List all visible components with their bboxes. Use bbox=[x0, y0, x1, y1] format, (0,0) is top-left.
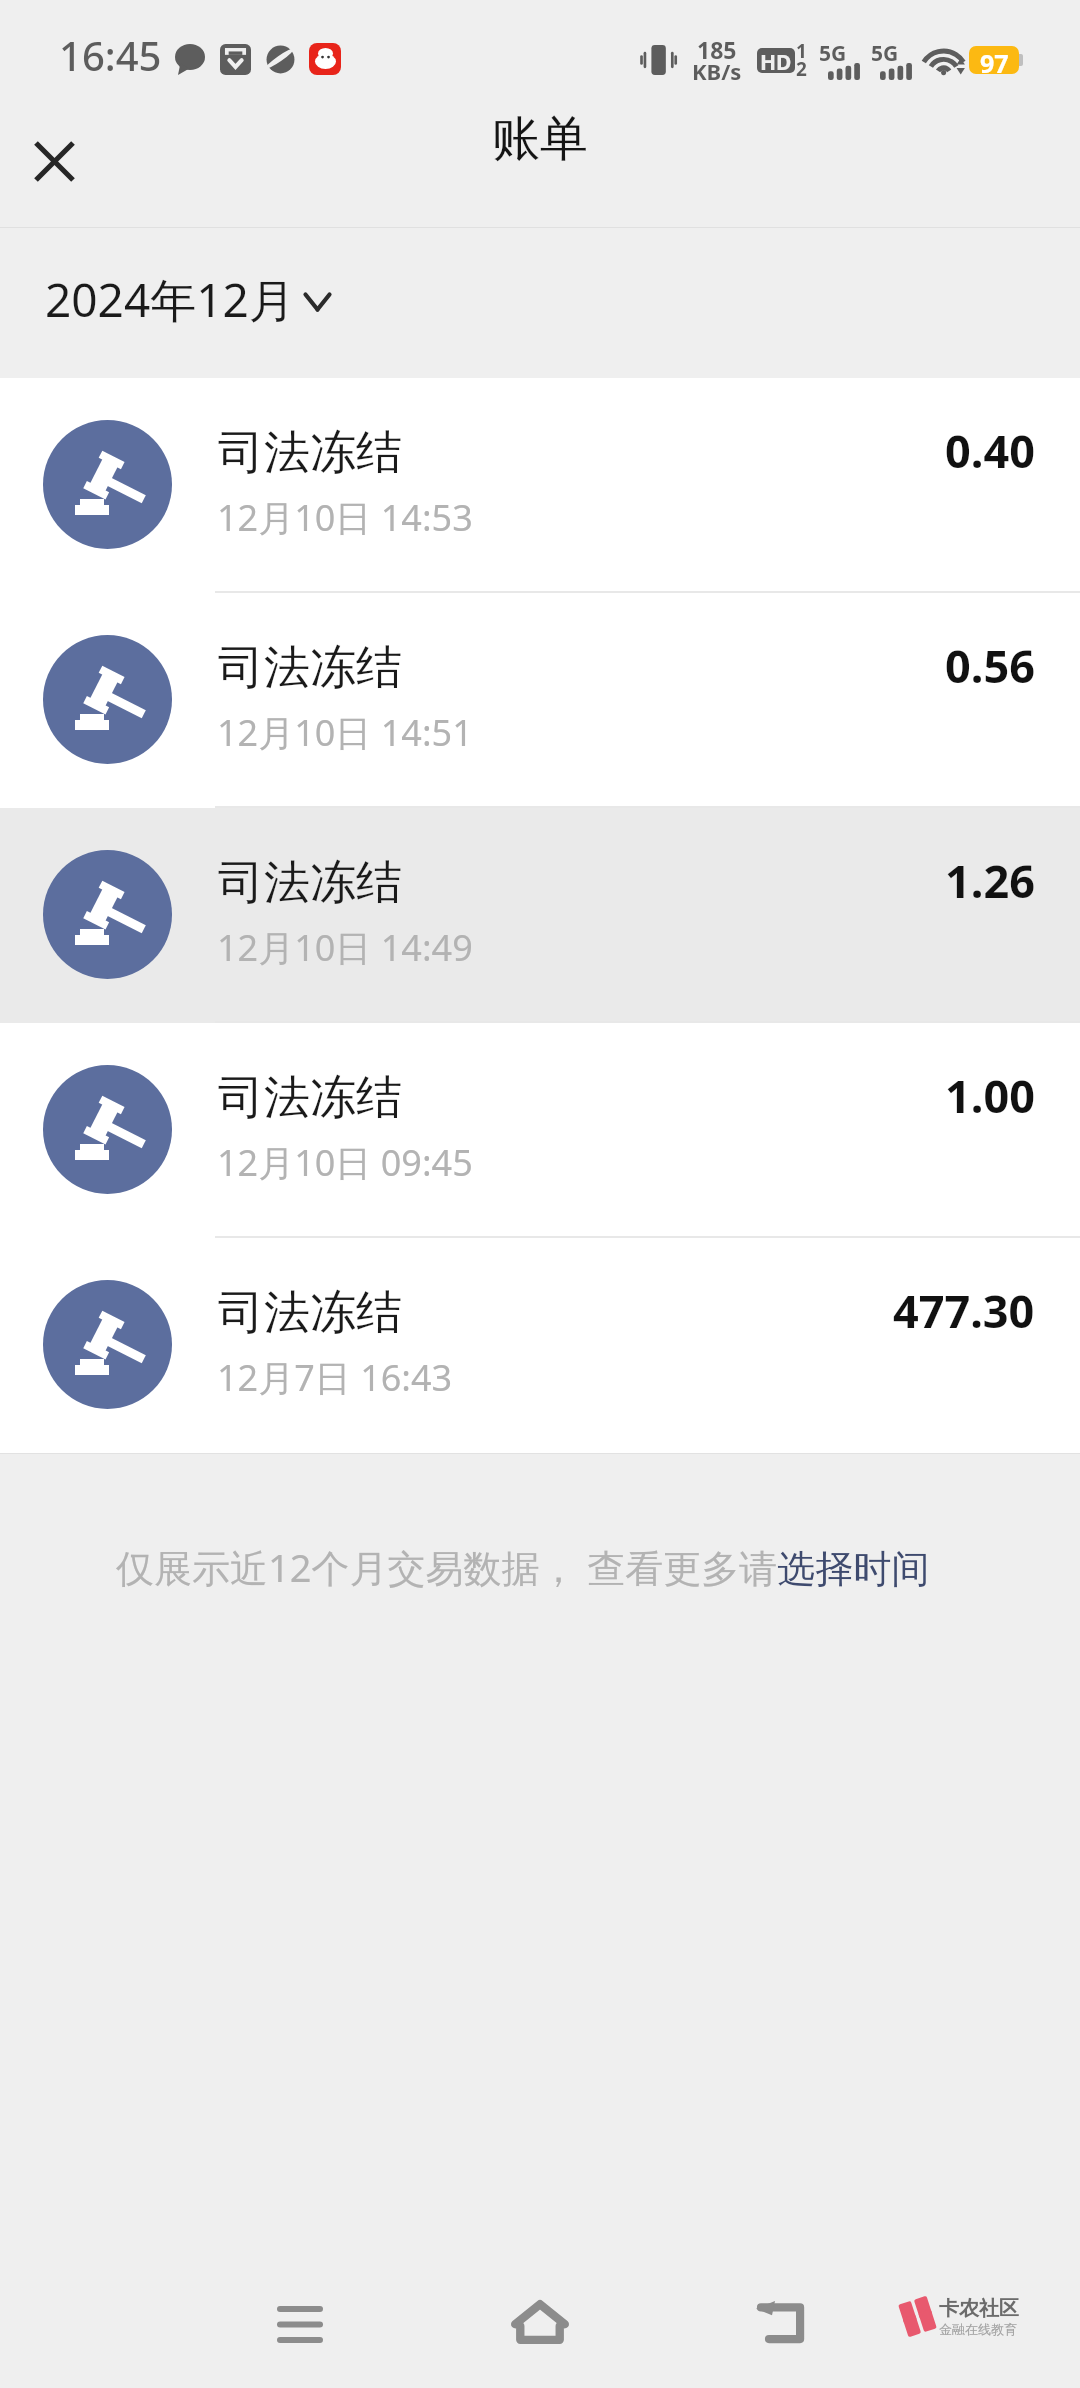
staticText: 5G bbox=[871, 39, 899, 68]
staticText: 477.30 bbox=[893, 1280, 1035, 1341]
staticText: 2024年12月 bbox=[45, 268, 295, 331]
staticText: 司法冻结 bbox=[218, 854, 402, 912]
staticText: 12月10日 14:51 bbox=[217, 708, 473, 757]
staticText: 12月10日 09:45 bbox=[217, 1138, 473, 1187]
staticText: 卡农社区 bbox=[939, 2296, 1019, 2321]
staticText: 97 bbox=[980, 46, 1009, 74]
staticText: 5G bbox=[819, 39, 847, 68]
button[interactable]: Home bbox=[485, 2267, 595, 2377]
staticText: 金融在线教育 bbox=[939, 2321, 1017, 2337]
staticText: 12月7日 16:43 bbox=[217, 1353, 453, 1402]
staticText: 司法冻结 bbox=[218, 639, 402, 697]
staticText: 司法冻结 bbox=[218, 1284, 402, 1342]
button[interactable]: 2024年12月 bbox=[30, 256, 349, 343]
staticText: KB/s bbox=[692, 56, 742, 86]
button[interactable]: Back bbox=[725, 2267, 835, 2377]
button[interactable]: 司法冻结 bbox=[0, 378, 1080, 593]
button[interactable]: 司法冻结 bbox=[0, 593, 1080, 808]
button[interactable]: 司法冻结 bbox=[0, 1238, 1080, 1453]
button[interactable]: Close bbox=[13, 120, 96, 203]
staticText: 司法冻结 bbox=[218, 1069, 402, 1127]
staticText: 2 bbox=[796, 56, 807, 82]
staticText: HD bbox=[760, 48, 792, 73]
button[interactable]: 仅展示近12个月交易数据， 查看更多请选择时间 bbox=[116, 1541, 930, 1593]
button[interactable]: 司法冻结 bbox=[0, 1023, 1080, 1238]
button[interactable]: 司法冻结 bbox=[0, 808, 1080, 1023]
staticText: 185 bbox=[697, 34, 737, 65]
staticText: 1.00 bbox=[945, 1065, 1035, 1126]
staticText: 0.40 bbox=[945, 420, 1035, 481]
staticText: 1 bbox=[796, 38, 807, 64]
staticText: 1.26 bbox=[945, 850, 1035, 911]
button[interactable]: Recent apps bbox=[245, 2269, 355, 2379]
staticText: 0.56 bbox=[945, 635, 1035, 696]
staticText: 12月10日 14:53 bbox=[217, 493, 473, 542]
staticText: 司法冻结 bbox=[218, 424, 402, 482]
staticText: 12月10日 14:49 bbox=[217, 923, 473, 972]
staticText: 16:45 bbox=[59, 28, 162, 82]
staticText: 仅展示近12个月交易数据， 查看更多请选择时间 bbox=[116, 1541, 930, 1593]
staticText: 账单 bbox=[492, 109, 588, 169]
